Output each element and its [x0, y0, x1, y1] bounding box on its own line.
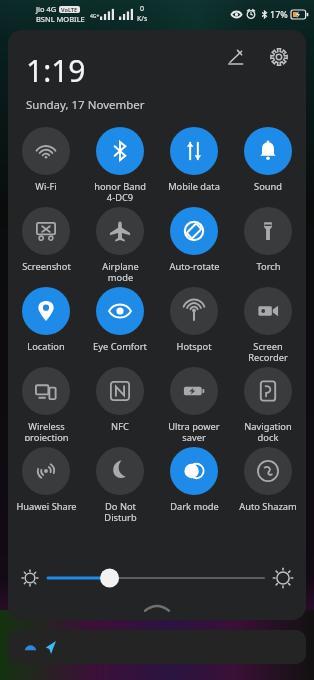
staticText: Mobile data: [168, 180, 220, 193]
staticText: K/s: [137, 14, 148, 24]
staticText: 4G+: [90, 13, 100, 20]
staticText: Hotspot: [176, 340, 212, 353]
button[interactable]: Airplane mode: [84, 201, 156, 281]
button[interactable]: Screenshot: [10, 201, 82, 281]
staticText: VoLTE: [61, 6, 78, 13]
button[interactable]: Auto Shazam: [232, 441, 304, 521]
button[interactable]: Location: [10, 281, 82, 361]
staticText: Do Not Disturb: [104, 500, 137, 521]
button[interactable]: Sound: [232, 121, 304, 201]
staticText: Dark mode: [170, 500, 219, 513]
staticText: Screenshot: [22, 260, 71, 273]
staticText: 0: [140, 4, 145, 14]
staticText: Eye Comfort: [93, 340, 147, 353]
staticText: Sunday, 17 November: [26, 97, 145, 113]
staticText: Navigation dock: [244, 420, 292, 441]
staticText: BSNL MOBILE: [36, 14, 85, 24]
staticText: honor Band 4-DC9: [94, 180, 146, 201]
button[interactable]: Do Not Disturb: [84, 441, 156, 521]
staticText: Jio 4G: [36, 4, 57, 14]
button[interactable]: [8, 630, 306, 664]
button[interactable]: Dark mode: [158, 441, 230, 521]
button[interactable]: Brightness: [48, 563, 264, 593]
button[interactable]: Navigation dock: [232, 361, 304, 441]
staticText: Huawei Share: [16, 500, 77, 513]
button[interactable]: Edit: [222, 44, 248, 70]
button[interactable]: Collapse: [8, 596, 306, 620]
staticText: Torch: [256, 260, 281, 273]
button[interactable]: Eye Comfort: [84, 281, 156, 361]
button[interactable]: Ultra power saver: [158, 361, 230, 441]
staticText: 17%: [270, 8, 288, 20]
button[interactable]: honor Band 4-DC9: [84, 121, 156, 201]
staticText: Airplane mode: [102, 260, 139, 281]
staticText: Wireless projection: [24, 420, 69, 441]
button[interactable]: Torch: [232, 201, 304, 281]
staticText: Auto-rotate: [169, 260, 220, 273]
button[interactable]: Hotspot: [158, 281, 230, 361]
button[interactable]: Wi-Fi: [10, 121, 82, 201]
staticText: 1:19: [26, 50, 86, 91]
staticText: Location: [27, 340, 65, 353]
button[interactable]: Mobile data: [158, 121, 230, 201]
button[interactable]: Screen Recorder: [232, 281, 304, 361]
staticText: Auto Shazam: [239, 500, 297, 513]
button[interactable]: Wireless projection: [10, 361, 82, 441]
button[interactable]: Auto-rotate: [158, 201, 230, 281]
button[interactable]: Settings: [266, 44, 292, 70]
staticText: Screen Recorder: [248, 340, 288, 361]
button[interactable]: NFC: [84, 361, 156, 441]
staticText: Ultra power saver: [168, 420, 220, 441]
staticText: NFC: [111, 420, 129, 433]
staticText: Sound: [254, 180, 282, 193]
button[interactable]: Huawei Share: [10, 441, 82, 521]
staticText: Wi-Fi: [35, 180, 57, 193]
